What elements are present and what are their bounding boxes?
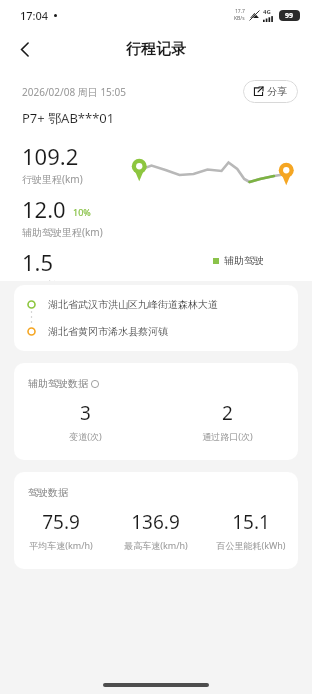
staticText: 4G (263, 8, 271, 16)
staticText: 辅助驾驶 (224, 254, 264, 267)
staticText: 平均车速(km/h) (29, 539, 93, 551)
button[interactable]: 辅助驾驶数据 (14, 363, 298, 460)
staticText: 百公里能耗(kWh) (216, 539, 286, 551)
staticText: 17.7 (235, 8, 245, 15)
staticText: KB/s (234, 15, 245, 22)
staticText: 行程记录 (126, 40, 186, 59)
staticText: 2 (222, 400, 233, 426)
staticText: 136.9 (131, 509, 180, 535)
staticText: 行驶里程(km) (22, 172, 83, 186)
staticText: 湖北省黄冈市浠水县蔡河镇 (48, 325, 168, 338)
button[interactable]: 驾驶数据 (14, 472, 298, 569)
staticText: 分享 (267, 85, 287, 98)
staticText: 15.1 (232, 509, 270, 535)
staticText: 通过路口(次) (202, 430, 253, 442)
staticText: 驾驶数据 (28, 486, 68, 499)
button[interactable]: 分享 (243, 80, 298, 103)
staticText: P7+ 鄂AB***01 (22, 109, 115, 127)
staticText: 17:04 (20, 8, 49, 23)
staticText: 10% (73, 206, 91, 218)
staticText: 变道(次) (69, 430, 102, 442)
staticText: 湖北省武汉市洪山区九峰街道森林大道 (48, 298, 218, 311)
staticText: 75.9 (42, 509, 80, 535)
staticText: 2026/02/08 周日 15:05 (22, 85, 126, 99)
staticText: 12.0 (22, 194, 66, 224)
staticText: 99 (285, 11, 294, 21)
button[interactable]: 湖北省武汉市洪山区九峰街道森林大道 (14, 285, 298, 351)
staticText: 辅助驾驶数据 (28, 377, 88, 390)
staticText: 辅助驾驶里程(km) (22, 225, 103, 239)
staticText: 1.5 (22, 247, 54, 277)
staticText: 最高车速(km/h) (124, 539, 188, 551)
staticText: 109.2 (22, 141, 79, 171)
button[interactable]: Back (8, 32, 42, 66)
staticText: 3 (80, 400, 91, 426)
